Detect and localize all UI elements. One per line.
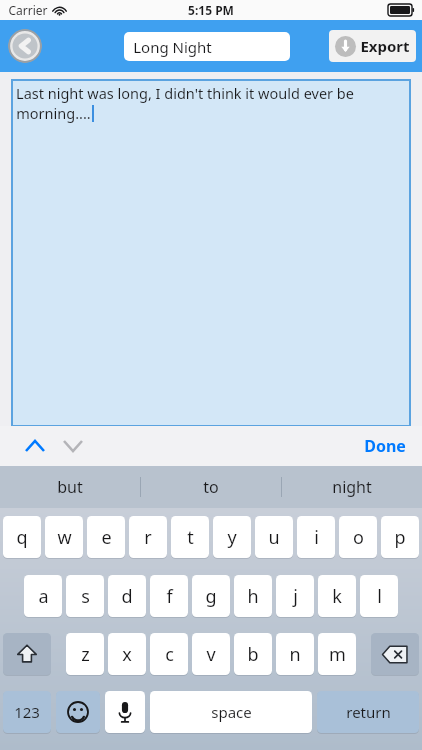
staticText: 5:15 PM xyxy=(188,2,234,18)
staticText: x xyxy=(122,642,132,667)
button[interactable]: t xyxy=(171,516,209,562)
button[interactable]: c xyxy=(150,633,188,679)
button[interactable]: space xyxy=(150,691,312,735)
staticText: q xyxy=(16,525,28,550)
button[interactable]: Back xyxy=(8,29,42,63)
button[interactable]: Backspace xyxy=(371,633,419,679)
staticText: j xyxy=(293,584,298,609)
button[interactable]: k xyxy=(318,575,356,621)
staticText: v xyxy=(206,642,216,667)
button[interactable]: to xyxy=(141,466,281,508)
button[interactable]: y xyxy=(213,516,251,562)
button[interactable]: l xyxy=(360,575,398,621)
staticText: b xyxy=(247,642,259,667)
button[interactable]: a xyxy=(24,575,62,621)
staticText: t xyxy=(187,525,194,550)
staticText: m xyxy=(329,642,346,667)
button[interactable]: u xyxy=(255,516,293,562)
staticText: l xyxy=(377,584,382,609)
button[interactable]: p xyxy=(381,516,419,562)
staticText: night xyxy=(332,476,372,498)
button[interactable]: e xyxy=(87,516,125,562)
staticText: y xyxy=(227,525,237,550)
staticText: return xyxy=(346,702,391,722)
staticText: 123 xyxy=(14,702,40,722)
staticText: space xyxy=(211,702,252,722)
staticText: f xyxy=(166,584,173,609)
button: Previous field xyxy=(0,426,422,466)
button[interactable]: Emoji xyxy=(56,691,100,735)
staticText: i xyxy=(314,525,319,550)
staticText: a xyxy=(38,584,49,609)
button[interactable]: Shift xyxy=(3,633,51,679)
button[interactable]: g xyxy=(192,575,230,621)
staticText: u xyxy=(268,525,280,550)
button[interactable]: s xyxy=(66,575,104,621)
button[interactable]: z xyxy=(66,633,104,679)
staticText: Long Night xyxy=(133,37,212,57)
staticText: Export xyxy=(360,36,410,56)
staticText: Carrier xyxy=(8,2,48,18)
button[interactable]: o xyxy=(339,516,377,562)
staticText: g xyxy=(205,584,217,609)
button[interactable]: Dictation xyxy=(105,691,145,735)
staticText: p xyxy=(394,525,406,550)
staticText: h xyxy=(247,584,259,609)
staticText: r xyxy=(144,525,152,550)
staticText: Done xyxy=(364,435,406,457)
button[interactable]: b xyxy=(234,633,272,679)
button[interactable]: m xyxy=(318,633,356,679)
button[interactable]: v xyxy=(192,633,230,679)
button[interactable]: Export xyxy=(329,30,416,62)
staticText: n xyxy=(289,642,301,667)
button[interactable]: Long Night xyxy=(124,32,290,61)
staticText: k xyxy=(332,584,342,609)
button[interactable]: d xyxy=(108,575,146,621)
button[interactable]: Previous field xyxy=(18,429,52,463)
button[interactable]: Done xyxy=(360,429,410,463)
button[interactable]: r xyxy=(129,516,167,562)
button[interactable]: q xyxy=(3,516,41,562)
staticText: z xyxy=(81,642,90,667)
button[interactable]: night xyxy=(282,466,422,508)
staticText: s xyxy=(81,584,90,609)
staticText: o xyxy=(353,525,364,550)
button[interactable]: Next field xyxy=(56,429,90,463)
button[interactable]: n xyxy=(276,633,314,679)
staticText: but xyxy=(57,476,83,498)
button[interactable]: i xyxy=(297,516,335,562)
button[interactable]: return xyxy=(317,691,419,735)
staticText: c xyxy=(165,642,174,667)
button[interactable]: Numbers xyxy=(3,691,51,735)
staticText: to xyxy=(203,476,219,498)
staticText: e xyxy=(101,525,112,550)
button[interactable]: f xyxy=(150,575,188,621)
staticText: Last night was long, I didn't think it w… xyxy=(16,83,354,103)
button[interactable]: j xyxy=(276,575,314,621)
staticText: d xyxy=(121,584,133,609)
staticText: w xyxy=(57,525,72,550)
staticText: morning.... xyxy=(16,103,91,123)
button[interactable]: but xyxy=(0,466,140,508)
button[interactable]: Last night was long, I didn't think it w… xyxy=(12,80,410,426)
button[interactable]: w xyxy=(45,516,83,562)
button[interactable]: x xyxy=(108,633,146,679)
button[interactable]: h xyxy=(234,575,272,621)
